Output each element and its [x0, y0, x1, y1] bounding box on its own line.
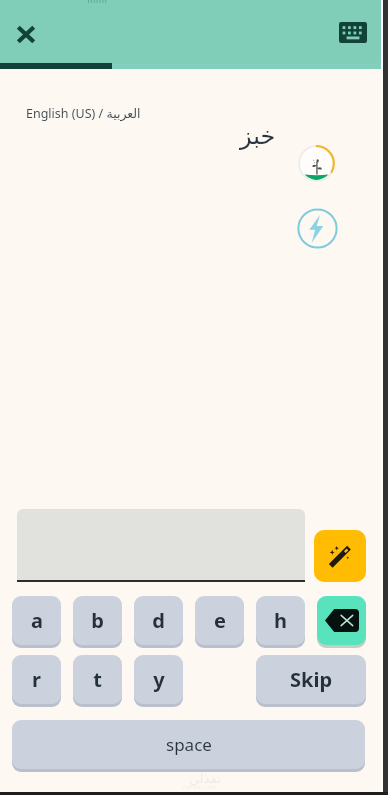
- staticText: nofazly.com: [183, 783, 217, 791]
- button[interactable]: e: [195, 596, 244, 645]
- staticText: b: [91, 607, 104, 634]
- staticText: y: [153, 666, 165, 693]
- button[interactable]: Speed review: [297, 208, 338, 249]
- button[interactable]: t: [73, 655, 122, 704]
- staticText: t: [93, 666, 102, 693]
- button[interactable]: Keyboard: [334, 13, 372, 51]
- staticText: space: [166, 733, 212, 756]
- staticText: h: [274, 607, 287, 634]
- button[interactable]: Close: [6, 14, 46, 54]
- button[interactable]: a: [12, 596, 61, 645]
- button[interactable]: b: [73, 596, 122, 645]
- button[interactable]: r: [12, 655, 61, 704]
- staticText: Skip: [290, 666, 333, 693]
- staticText: نفذلي: [189, 771, 221, 786]
- button[interactable]: space: [12, 720, 365, 769]
- button[interactable]: Backspace: [317, 596, 366, 645]
- button[interactable]: Skip: [256, 655, 366, 704]
- button[interactable]: d: [134, 596, 183, 645]
- button[interactable]: Learning progress: [298, 145, 335, 182]
- button[interactable]: Answer field: [17, 509, 305, 581]
- staticText: r: [32, 666, 41, 693]
- staticText: English (US) / العربية: [26, 105, 141, 122]
- staticText: d: [152, 607, 165, 634]
- button[interactable]: y: [134, 655, 183, 704]
- staticText: a: [31, 607, 43, 634]
- staticText: e: [214, 607, 226, 634]
- button[interactable]: h: [256, 596, 305, 645]
- button[interactable]: Hint: [314, 530, 366, 582]
- staticText: خبز: [240, 122, 276, 150]
